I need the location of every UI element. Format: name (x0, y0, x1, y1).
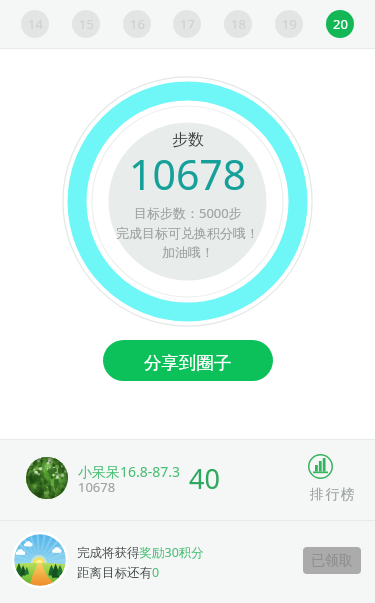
staticText: 15 (79, 15, 94, 33)
staticText: 20 (333, 15, 348, 33)
staticText: 40 (189, 460, 220, 497)
staticText: 目标步数：5000步 (134, 204, 242, 222)
button[interactable]: 已领取 (303, 547, 361, 574)
staticText: 排行榜 (310, 486, 356, 504)
button[interactable]: 分享到圈子 (103, 340, 273, 381)
button[interactable]: 排行榜 (292, 446, 372, 508)
staticText: 步数 (172, 130, 204, 150)
button[interactable]: 18 (224, 10, 252, 38)
button[interactable]: 14 (21, 10, 49, 38)
staticText: 10678 (78, 478, 116, 496)
button[interactable]: 小呆呆16.8-87.3 (0, 440, 375, 520)
staticText: 16 (130, 15, 145, 33)
staticText: 已领取 (311, 552, 353, 570)
staticText: 17 (180, 15, 195, 33)
staticText: 完成将获得奖励30积分 (77, 544, 204, 561)
staticText: 完成目标可兑换积分哦！ (116, 225, 259, 241)
staticText: 距离目标还有0 (77, 564, 160, 581)
button[interactable]: 16 (123, 10, 151, 38)
staticText: 10678 (129, 146, 247, 202)
staticText: 分享到圈子 (144, 352, 232, 374)
button[interactable]: 17 (173, 10, 201, 38)
staticText: 加油哦！ (162, 244, 214, 260)
staticText: 小呆呆16.8-87.3 (78, 462, 181, 481)
button[interactable]: 15 (72, 10, 100, 38)
staticText: 18 (231, 15, 246, 33)
staticText: 14 (28, 15, 43, 33)
button[interactable]: 19 (275, 10, 303, 38)
staticText: 19 (282, 15, 297, 33)
button[interactable]: 20 (326, 10, 354, 38)
